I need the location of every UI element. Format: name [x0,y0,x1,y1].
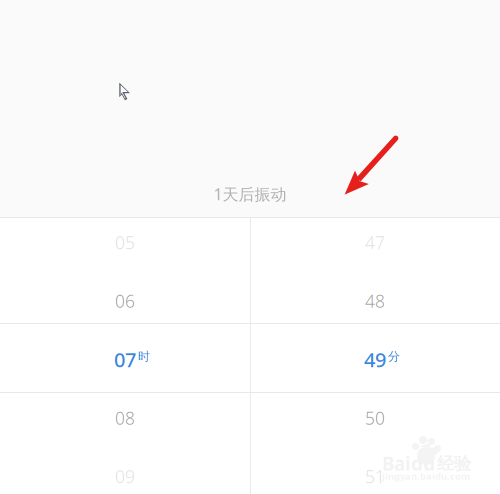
button[interactable]: 08时 [0,389,250,447]
staticText: 06 [115,289,135,312]
staticText: 1天后振动 [213,183,286,205]
button[interactable]: 51分 [250,447,500,494]
staticText: 08 [115,406,135,429]
staticText: 经验 [437,453,471,474]
button[interactable]: 48分 [250,272,500,330]
button[interactable]: 05时 [0,213,250,272]
staticText: 47 [365,231,385,254]
staticText: 51 [365,465,385,488]
button[interactable]: 49分 [250,330,500,389]
staticText: 分 [388,349,400,364]
staticText: 05 [115,231,135,254]
staticText: 09 [115,465,135,488]
staticText: 49 [364,346,386,373]
button[interactable]: 47分 [250,213,500,272]
button[interactable]: 06时 [0,272,250,330]
staticText: jingyan.baidu.com [382,470,470,482]
staticText: 50 [365,406,385,429]
staticText: 48 [365,289,385,312]
staticText: 07 [114,346,136,373]
button[interactable]: 07时 [0,330,250,389]
button[interactable]: 50分 [250,389,500,447]
staticText: 时 [138,349,150,364]
staticText: Baidu [382,451,435,476]
